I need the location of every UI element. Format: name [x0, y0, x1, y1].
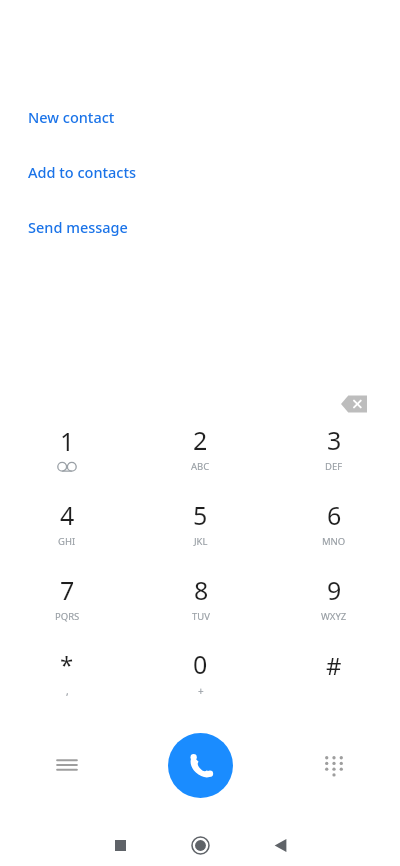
- staticText: 6: [327, 498, 342, 532]
- button[interactable]: Back: [260, 825, 300, 865]
- button[interactable]: Backspace: [330, 380, 378, 428]
- staticText: 2: [193, 423, 208, 457]
- staticText: Send message: [28, 217, 128, 237]
- button[interactable]: 6: [267, 485, 400, 560]
- button[interactable]: 8: [134, 560, 267, 635]
- staticText: 0: [193, 647, 208, 681]
- button[interactable]: 0: [134, 635, 267, 710]
- button[interactable]: Add to contacts: [0, 155, 400, 189]
- staticText: 5: [193, 498, 208, 532]
- staticText: ,: [66, 684, 69, 698]
- button[interactable]: Menu: [0, 730, 134, 800]
- staticText: 7: [60, 573, 75, 607]
- button[interactable]: Send message: [0, 210, 400, 244]
- button[interactable]: 5: [134, 485, 267, 560]
- staticText: JKL: [194, 535, 208, 548]
- button[interactable]: 4: [0, 485, 134, 560]
- staticText: 8: [194, 573, 209, 607]
- staticText: New contact: [28, 107, 115, 127]
- staticText: +: [198, 684, 204, 698]
- button[interactable]: #: [267, 635, 400, 710]
- staticText: *: [60, 648, 74, 681]
- button[interactable]: 1: [0, 410, 134, 485]
- button[interactable]: Recents: [100, 825, 140, 865]
- staticText: 3: [327, 423, 342, 457]
- button[interactable]: 3: [267, 410, 400, 485]
- staticText: 9: [327, 573, 342, 607]
- button[interactable]: 2: [134, 410, 267, 485]
- button[interactable]: Call: [168, 733, 233, 798]
- staticText: PQRS: [55, 610, 80, 623]
- button[interactable]: 7: [0, 560, 134, 635]
- staticText: 4: [60, 498, 75, 532]
- button[interactable]: New contact: [0, 100, 400, 134]
- staticText: TUV: [192, 610, 210, 623]
- staticText: 1: [60, 424, 75, 458]
- staticText: DEF: [325, 460, 343, 473]
- button[interactable]: Dialpad: [267, 730, 400, 800]
- button[interactable]: *: [0, 635, 134, 710]
- staticText: Add to contacts: [28, 162, 137, 182]
- button[interactable]: Home: [180, 825, 220, 865]
- staticText: WXYZ: [321, 610, 347, 623]
- button[interactable]: 9: [267, 560, 400, 635]
- staticText: #: [326, 649, 342, 682]
- staticText: MNO: [322, 535, 346, 548]
- staticText: GHI: [58, 535, 76, 548]
- staticText: ABC: [191, 460, 210, 473]
